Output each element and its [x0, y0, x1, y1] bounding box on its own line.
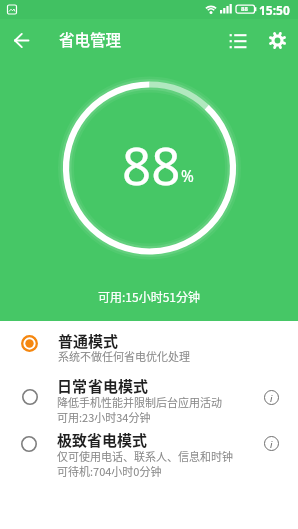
button[interactable]: 日常 — [0, 367, 298, 421]
button[interactable] — [222, 26, 248, 52]
button[interactable]: 普通模式 — [0, 321, 298, 367]
staticText: i — [270, 392, 273, 404]
staticText: 仅可使用电话、联系人、信息和时钟 — [57, 448, 233, 464]
staticText: 系统不做任何省电优化处理 — [58, 348, 190, 364]
staticText: 降低手机性能并限制后台应用活动 — [57, 394, 222, 410]
staticText: 省电管理 — [59, 28, 122, 50]
staticText: 15:50 — [259, 2, 290, 18]
staticText: 日常 — [57, 375, 88, 397]
staticText: 可用:23小时34分钟 — [57, 409, 151, 425]
button[interactable] — [0, 19, 39, 58]
staticText: 普通模式 — [58, 330, 119, 352]
staticText: 可用:15小时51分钟 — [98, 288, 200, 305]
button[interactable]: i — [264, 390, 279, 405]
staticText: 可待机:704小时0分钟 — [57, 463, 162, 479]
button[interactable] — [264, 27, 291, 54]
staticText: 省电模式 — [88, 375, 149, 397]
staticText: 88 — [122, 130, 181, 199]
button[interactable]: i — [264, 436, 279, 451]
staticText: i — [270, 438, 273, 450]
button[interactable]: 极致省电模式 — [0, 421, 298, 483]
staticText: % — [181, 165, 194, 186]
staticText: 极致省电模式 — [57, 429, 148, 451]
staticText: 88 — [241, 5, 248, 13]
